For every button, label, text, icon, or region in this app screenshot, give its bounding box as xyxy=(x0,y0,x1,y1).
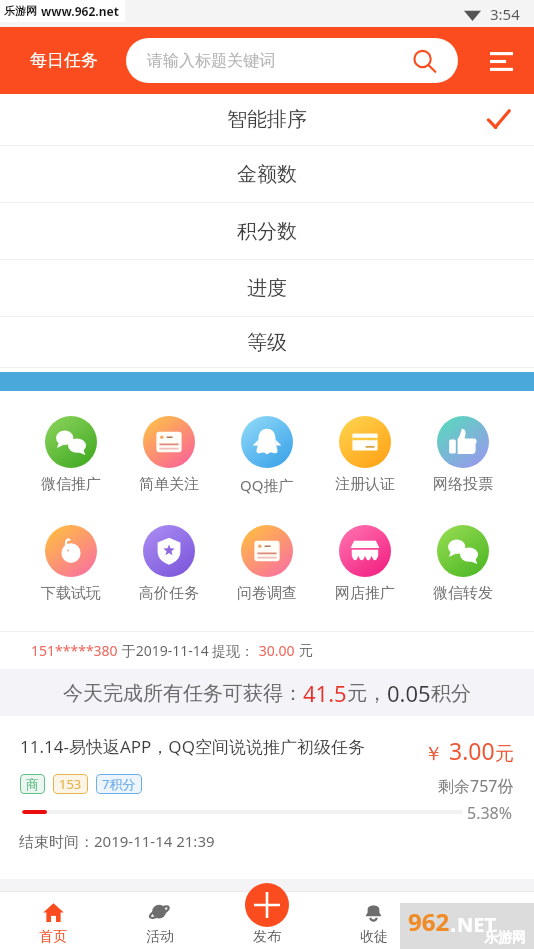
button[interactable]: 发布 xyxy=(213,891,320,949)
staticText: 元 xyxy=(495,742,514,766)
button[interactable]: 我的 xyxy=(427,891,534,949)
staticText: 问卷调查 xyxy=(237,584,297,603)
staticText: www.962.net xyxy=(41,3,119,19)
staticText: 请输入标题关键词 xyxy=(147,51,275,71)
staticText: 153 xyxy=(59,775,82,793)
button[interactable]: 积分数 xyxy=(0,203,534,259)
staticText: 下载试玩 xyxy=(41,584,101,603)
button[interactable]: QQ推广 xyxy=(218,416,316,495)
button[interactable]: 进度 xyxy=(0,260,534,316)
button[interactable]: 注册认证 xyxy=(316,416,414,494)
staticText: 微信推广 xyxy=(41,475,101,494)
button[interactable]: 活动 xyxy=(106,891,213,949)
staticText: 3:54 xyxy=(490,4,520,24)
button[interactable]: 微信转发 xyxy=(414,525,512,603)
staticText: 7积分 xyxy=(102,775,136,793)
staticText: 注册认证 xyxy=(335,475,395,494)
staticText: 乐游网 xyxy=(484,929,526,947)
staticText: 于2019-11-14 提现： xyxy=(118,641,255,660)
staticText: 等级 xyxy=(247,330,287,355)
button[interactable]: 下载试玩 xyxy=(22,525,120,603)
button[interactable]: 高价任务 xyxy=(120,525,218,603)
staticText: 5.38% xyxy=(467,802,513,824)
staticText: 金额数 xyxy=(237,162,297,187)
staticText: . xyxy=(450,908,457,938)
button[interactable]: 发布 xyxy=(245,883,289,927)
staticText: 41.5 xyxy=(303,678,347,708)
staticText: 积分 xyxy=(431,681,471,706)
button[interactable]: 请输入标题关键词 xyxy=(126,38,458,83)
staticText: 网店推广 xyxy=(335,584,395,603)
staticText: 元 xyxy=(299,642,313,660)
staticText: 剩余757份 xyxy=(438,775,514,797)
staticText: 151*****380 xyxy=(31,641,118,660)
button[interactable]: 首页 xyxy=(0,891,106,949)
staticText: 962 xyxy=(408,905,450,938)
staticText: 活动 xyxy=(146,928,174,946)
staticText: 积分数 xyxy=(237,219,297,244)
button[interactable]: 等级 xyxy=(0,317,534,367)
staticText: 今天完成所有任务可获得： xyxy=(63,681,303,706)
staticText: 微信转发 xyxy=(433,584,493,603)
staticText: 3.00 xyxy=(443,735,495,766)
staticText: 进度 xyxy=(247,276,287,301)
staticText: QQ推广 xyxy=(240,475,294,495)
staticText: 发布 xyxy=(253,928,281,946)
staticText: ￥ xyxy=(424,742,443,766)
staticText: 我的 xyxy=(467,928,495,946)
staticText: 0.05 xyxy=(387,678,431,708)
staticText: NET xyxy=(457,911,496,938)
button[interactable]: 简单关注 xyxy=(120,416,218,494)
staticText: 收徒 xyxy=(360,928,388,946)
button[interactable]: 智能排序 xyxy=(0,94,534,145)
button[interactable]: 金额数 xyxy=(0,146,534,202)
staticText: 元， xyxy=(347,681,387,706)
button[interactable]: 每日任务 xyxy=(30,50,98,71)
staticText: 高价任务 xyxy=(139,584,199,603)
button[interactable]: 网络投票 xyxy=(414,416,512,494)
staticText: 简单关注 xyxy=(139,475,199,494)
staticText: 首页 xyxy=(39,928,67,946)
button[interactable]: 问卷调查 xyxy=(218,525,316,603)
staticText: 结束时间：2019-11-14 21:39 xyxy=(19,831,215,851)
staticText: 乐游网 xyxy=(4,4,37,18)
button[interactable]: 网店推广 xyxy=(316,525,414,603)
button[interactable]: 收徒 xyxy=(320,891,427,949)
staticText: 网络投票 xyxy=(433,475,493,494)
staticText: 30.00 xyxy=(255,641,299,660)
button[interactable]: 11.14-易快返APP，QQ空间说说推广初级任务 xyxy=(0,716,534,851)
staticText: 11.14-易快返APP，QQ空间说说推广初级任务 xyxy=(20,735,365,758)
button[interactable]: 微信推广 xyxy=(22,416,120,494)
staticText: 商 xyxy=(26,776,39,792)
staticText: 智能排序 xyxy=(227,107,307,132)
button[interactable]: Menu xyxy=(479,39,523,83)
